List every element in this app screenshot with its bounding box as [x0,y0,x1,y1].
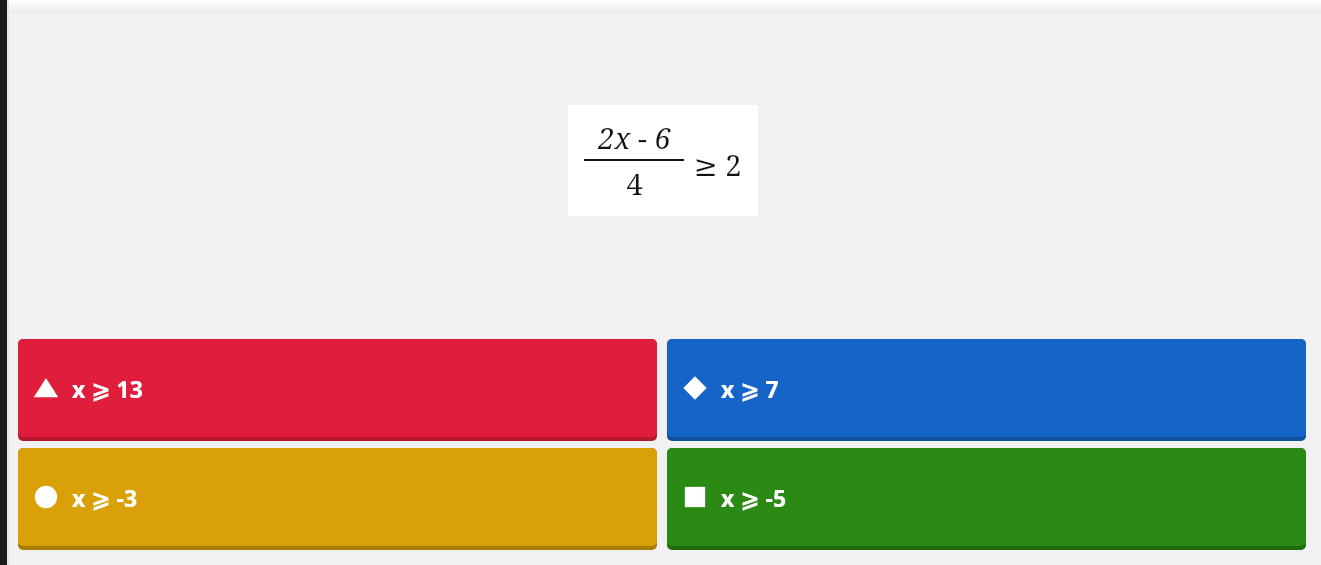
staticText: x ⩾ -3 [72,482,138,513]
other: Triangle [33,375,59,401]
button[interactable]: x ⩾ 13 [18,339,657,441]
staticText: ≥ 2 [693,145,742,184]
staticText: x ⩾ 13 [72,373,143,404]
button[interactable]: x ⩾ 7 [667,339,1306,441]
other: Diamond [682,375,708,401]
other: Circle [33,484,59,510]
staticText: x ⩾ -5 [721,482,787,513]
other: Square [682,484,708,510]
button[interactable]: x ⩾ -3 [18,448,657,550]
button[interactable]: x ⩾ -5 [667,448,1306,550]
staticText: x ⩾ 7 [721,373,779,404]
staticText: 2x − 6 [598,118,671,157]
staticText: 4 [626,164,643,203]
